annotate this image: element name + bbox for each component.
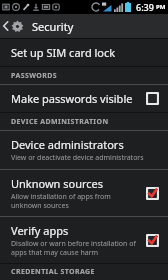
staticText: 6:39: [136, 1, 154, 13]
staticText: Make passwords visible: [11, 91, 133, 106]
button[interactable]: Make passwords visible: [0, 85, 168, 112]
staticText: PASSWORDS: [11, 71, 57, 81]
staticText: PM: [156, 3, 166, 11]
staticText: DEVICE ADMINISTRATION: [11, 117, 109, 127]
staticText: CREDENTIAL STORAGE: [11, 267, 95, 277]
staticText: Disallow or warn before installation of …: [11, 239, 136, 257]
button[interactable]: Verify apps: [0, 217, 168, 263]
staticText: Device administrators: [11, 137, 124, 152]
button[interactable]: Navigate up: [0, 14, 26, 38]
staticText: Verify apps: [11, 223, 69, 238]
staticText: Allow installation of apps from unknown …: [11, 192, 111, 210]
staticText: View or deactivate device administrators: [11, 153, 144, 163]
button[interactable]: Device administrators: [0, 131, 168, 169]
button[interactable]: Unknown sources: [0, 170, 168, 216]
button[interactable]: Set up SIM card lock: [0, 39, 168, 66]
staticText: Unknown sources: [11, 176, 104, 191]
staticText: Security: [32, 19, 74, 34]
staticText: Set up SIM card lock: [11, 45, 116, 60]
